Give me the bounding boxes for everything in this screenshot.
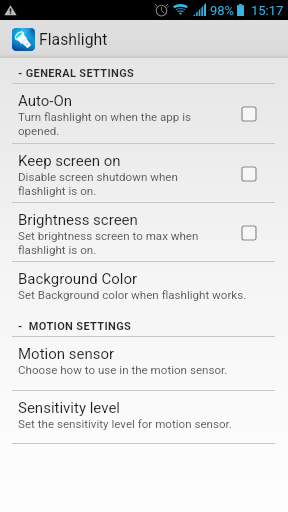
staticText: Turn flashlight on when the app is opene…: [18, 110, 211, 137]
staticText: Auto-On: [18, 92, 73, 110]
staticText: - GENERAL SETTINGS: [18, 67, 135, 80]
staticText: Sensitivity level: [18, 399, 121, 417]
staticText: 98%: [210, 3, 235, 18]
staticText: 15:17: [251, 3, 284, 18]
other: Flashlight app icon: [12, 28, 35, 51]
staticText: Set the sensitivity level for motion sen…: [18, 417, 232, 431]
button[interactable]: Motion sensor: [0, 337, 288, 391]
staticText: Background Color: [18, 270, 138, 288]
button[interactable]: Background Color: [0, 262, 288, 311]
staticText: Keep screen on: [18, 152, 121, 170]
button[interactable]: Keep screen on: [0, 144, 288, 203]
staticText: Set Background color when flashlight wor…: [18, 288, 247, 302]
staticText: - MOTION SETTINGS: [18, 320, 132, 333]
button[interactable]: Sensitivity level: [0, 391, 288, 444]
staticText: Motion sensor: [18, 345, 115, 363]
staticText: Flashlight: [39, 30, 108, 49]
button[interactable]: Auto-On: [0, 84, 288, 144]
staticText: Disable screen shutdown when flashlight …: [18, 170, 211, 197]
staticText: Choose how to use in the motion sensor.: [18, 363, 228, 377]
staticText: Set brightness screen to max when flashl…: [18, 229, 211, 256]
button[interactable]: Brightness screen: [0, 203, 288, 262]
staticText: Brightness screen: [18, 211, 138, 229]
